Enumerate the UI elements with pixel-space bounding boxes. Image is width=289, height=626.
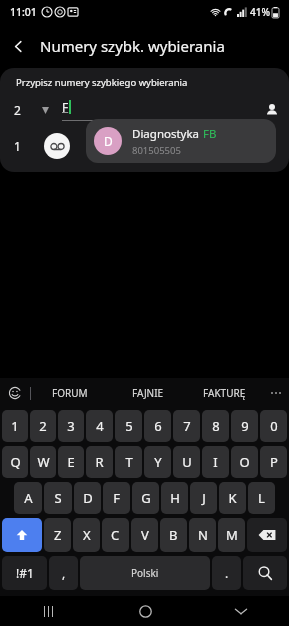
button[interactable]: 3: [58, 410, 84, 442]
staticText: K: [228, 489, 237, 507]
staticText: U: [182, 453, 192, 471]
staticText: H: [170, 489, 180, 507]
button[interactable]: Back: [0, 28, 36, 64]
button[interactable]: Emoji: [0, 378, 30, 408]
staticText: 11:01: [10, 5, 37, 19]
staticText: Polski: [131, 566, 159, 580]
button[interactable]: FAJNIE: [109, 378, 186, 408]
staticText: I: [213, 453, 218, 471]
staticText: 0: [270, 417, 278, 435]
staticText: ,: [62, 565, 66, 581]
button[interactable]: J: [190, 482, 217, 514]
staticText: P: [270, 453, 278, 471]
button[interactable]: Hide keyboard: [193, 596, 289, 626]
button[interactable]: 2: [30, 410, 56, 442]
button[interactable]: 1: [2, 410, 28, 442]
staticText: FAJNIE: [132, 386, 164, 400]
button[interactable]: Wybierz pozycję: [34, 99, 56, 121]
button[interactable]: Backspace: [247, 518, 287, 552]
button[interactable]: 8: [202, 410, 229, 442]
staticText: 3: [67, 417, 75, 435]
button[interactable]: U: [173, 446, 200, 478]
button[interactable]: I: [202, 446, 229, 478]
staticText: Numery szybk. wybierania: [40, 36, 225, 56]
staticText: 1: [14, 138, 21, 154]
button[interactable]: 0: [260, 410, 287, 442]
staticText: G: [141, 489, 151, 507]
button[interactable]: Recent apps: [0, 596, 97, 626]
staticText: 801505505: [132, 144, 181, 157]
button[interactable]: M: [218, 518, 245, 552]
button[interactable]: 7: [173, 410, 200, 442]
button[interactable]: V: [131, 518, 158, 552]
button[interactable]: O: [231, 446, 258, 478]
staticText: M: [226, 526, 238, 544]
staticText: FORUM: [52, 386, 88, 400]
button[interactable]: D: [74, 482, 101, 514]
staticText: E: [67, 453, 75, 471]
button[interactable]: S: [44, 482, 72, 514]
button[interactable]: L: [248, 482, 275, 514]
button[interactable]: X: [73, 518, 100, 552]
staticText: Y: [154, 453, 162, 471]
staticText: Przypisz numery szybkiego wybierania: [16, 76, 188, 89]
button[interactable]: Home: [97, 596, 193, 626]
staticText: FAKTURĘ: [203, 386, 246, 400]
button[interactable]: A: [14, 482, 42, 514]
button[interactable]: F: [103, 482, 130, 514]
button[interactable]: Wybierz kontakt: [255, 95, 289, 125]
staticText: F: [113, 489, 120, 507]
staticText: S: [54, 489, 62, 507]
button[interactable]: Z: [44, 518, 71, 552]
button[interactable]: W: [30, 446, 56, 478]
staticText: 7: [183, 417, 191, 435]
button[interactable]: G: [132, 482, 159, 514]
button[interactable]: P: [260, 446, 287, 478]
staticText: W: [37, 453, 50, 471]
button[interactable]: R: [86, 446, 113, 478]
button[interactable]: T: [115, 446, 142, 478]
button[interactable]: .: [212, 556, 241, 590]
staticText: 4: [96, 417, 104, 435]
staticText: 2: [14, 102, 21, 118]
button[interactable]: K: [219, 482, 246, 514]
button[interactable]: 6: [144, 410, 171, 442]
staticText: V: [141, 526, 149, 544]
button[interactable]: Shift: [2, 518, 42, 552]
button[interactable]: H: [161, 482, 188, 514]
button[interactable]: Q: [2, 446, 28, 478]
button[interactable]: 9: [231, 410, 258, 442]
staticText: R: [95, 453, 104, 471]
button[interactable]: Y: [144, 446, 171, 478]
button[interactable]: 4: [86, 410, 113, 442]
button[interactable]: Więcej: [263, 378, 289, 408]
staticText: 2: [39, 417, 47, 435]
staticText: X: [83, 526, 91, 544]
staticText: Z: [54, 526, 62, 544]
staticText: 9: [241, 417, 249, 435]
button[interactable]: E: [58, 446, 84, 478]
button[interactable]: 5: [115, 410, 142, 442]
staticText: 41%: [250, 5, 270, 19]
staticText: Q: [10, 453, 21, 471]
button[interactable]: B: [160, 518, 187, 552]
button[interactable]: FORUM: [31, 378, 109, 408]
button[interactable]: C: [102, 518, 129, 552]
button[interactable]: N: [189, 518, 216, 552]
button[interactable]: Polski: [80, 556, 210, 590]
button[interactable]: FAKTURĘ: [186, 378, 263, 408]
button[interactable]: ,: [49, 556, 78, 590]
staticText: T: [125, 453, 133, 471]
staticText: J: [202, 489, 206, 507]
staticText: 8: [212, 417, 220, 435]
staticText: Diagnostyka: [132, 126, 203, 142]
staticText: L: [258, 489, 265, 507]
button[interactable]: Szukaj: [243, 556, 287, 590]
button[interactable]: 1: [0, 129, 289, 163]
button[interactable]: D: [86, 119, 276, 163]
staticText: FB: [203, 126, 217, 142]
button[interactable]: !#1: [2, 556, 47, 590]
staticText: .: [225, 565, 229, 581]
staticText: F: [62, 99, 69, 115]
staticText: 5: [125, 417, 133, 435]
